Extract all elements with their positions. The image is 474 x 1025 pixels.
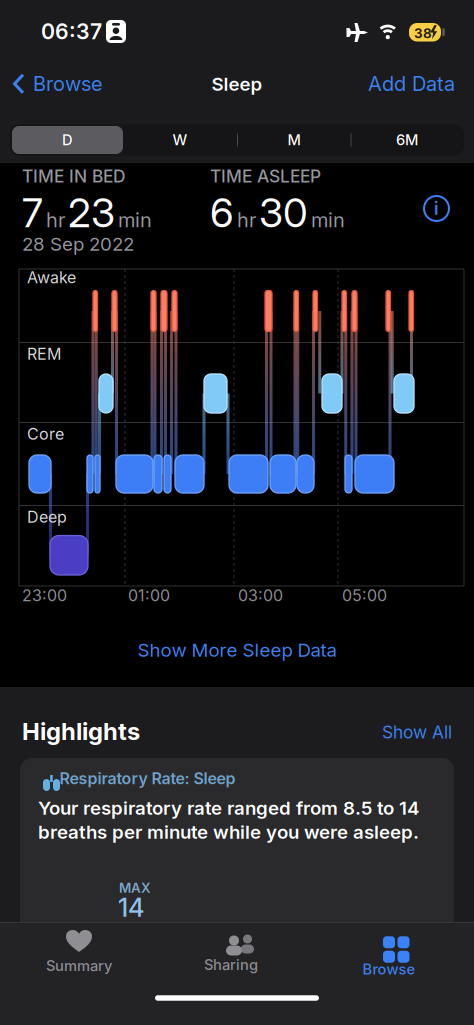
staticText: Show More Sleep Data [137,639,336,661]
staticText: Add Data [368,72,455,96]
button[interactable]: Browse [329,929,449,978]
staticText: 06:37 [41,19,102,44]
button[interactable]: 6M [352,124,462,156]
staticText: 23 [68,189,115,236]
button[interactable]: Respiratory Rate: Sleep [20,758,454,1025]
staticText: Core [27,424,64,443]
button[interactable]: Summary [19,929,139,974]
staticText: REM [27,344,61,363]
staticText: 03:00 [238,586,283,605]
staticText: min [311,208,345,232]
staticText: D [62,131,73,149]
staticText: min [118,208,152,232]
staticText: Respiratory Rate: Sleep [59,769,235,788]
staticText: 01:00 [128,586,170,605]
staticText: 14 [118,892,144,922]
staticText: Sleep [211,73,262,95]
staticText: MAX [119,880,151,896]
staticText: Your respiratory rate ranged from 8.5 to… [38,797,419,819]
button[interactable]: Add Data [368,72,455,96]
staticText: TIME IN BED [22,166,126,186]
staticText: hr [237,208,256,232]
staticText: Show All [382,722,452,742]
staticText: Highlights [22,717,140,745]
staticText: 38 [414,25,432,41]
staticText: Deep [27,507,67,526]
staticText: Browse [362,960,415,978]
staticText: i [434,198,439,219]
staticText: 23:00 [22,586,67,605]
staticText: W [172,131,187,149]
button[interactable]: Sharing [171,929,291,973]
staticText: Summary [46,957,112,974]
button[interactable]: About Sleep [424,196,449,221]
staticText: TIME ASLEEP [210,166,321,186]
button[interactable]: Browse [13,72,103,96]
button[interactable]: D [12,126,123,154]
staticText: Sharing [204,956,258,973]
button[interactable]: W [125,124,235,156]
staticText: 6 [210,189,234,236]
staticText: 05:00 [342,586,387,605]
staticText: hr [46,208,65,232]
button[interactable]: Show More Sleep Data [0,639,474,661]
button[interactable]: M [239,124,349,156]
staticText: Awake [27,268,76,287]
button[interactable]: Show All [382,722,452,742]
staticText: breaths per minute while you were asleep… [38,821,419,843]
staticText: 30 [259,189,308,236]
staticText: Browse [33,72,103,96]
staticText: 7 [22,189,43,236]
staticText: 6M [396,131,418,149]
staticText: 28 Sep 2022 [22,233,134,255]
staticText: M [287,131,300,149]
